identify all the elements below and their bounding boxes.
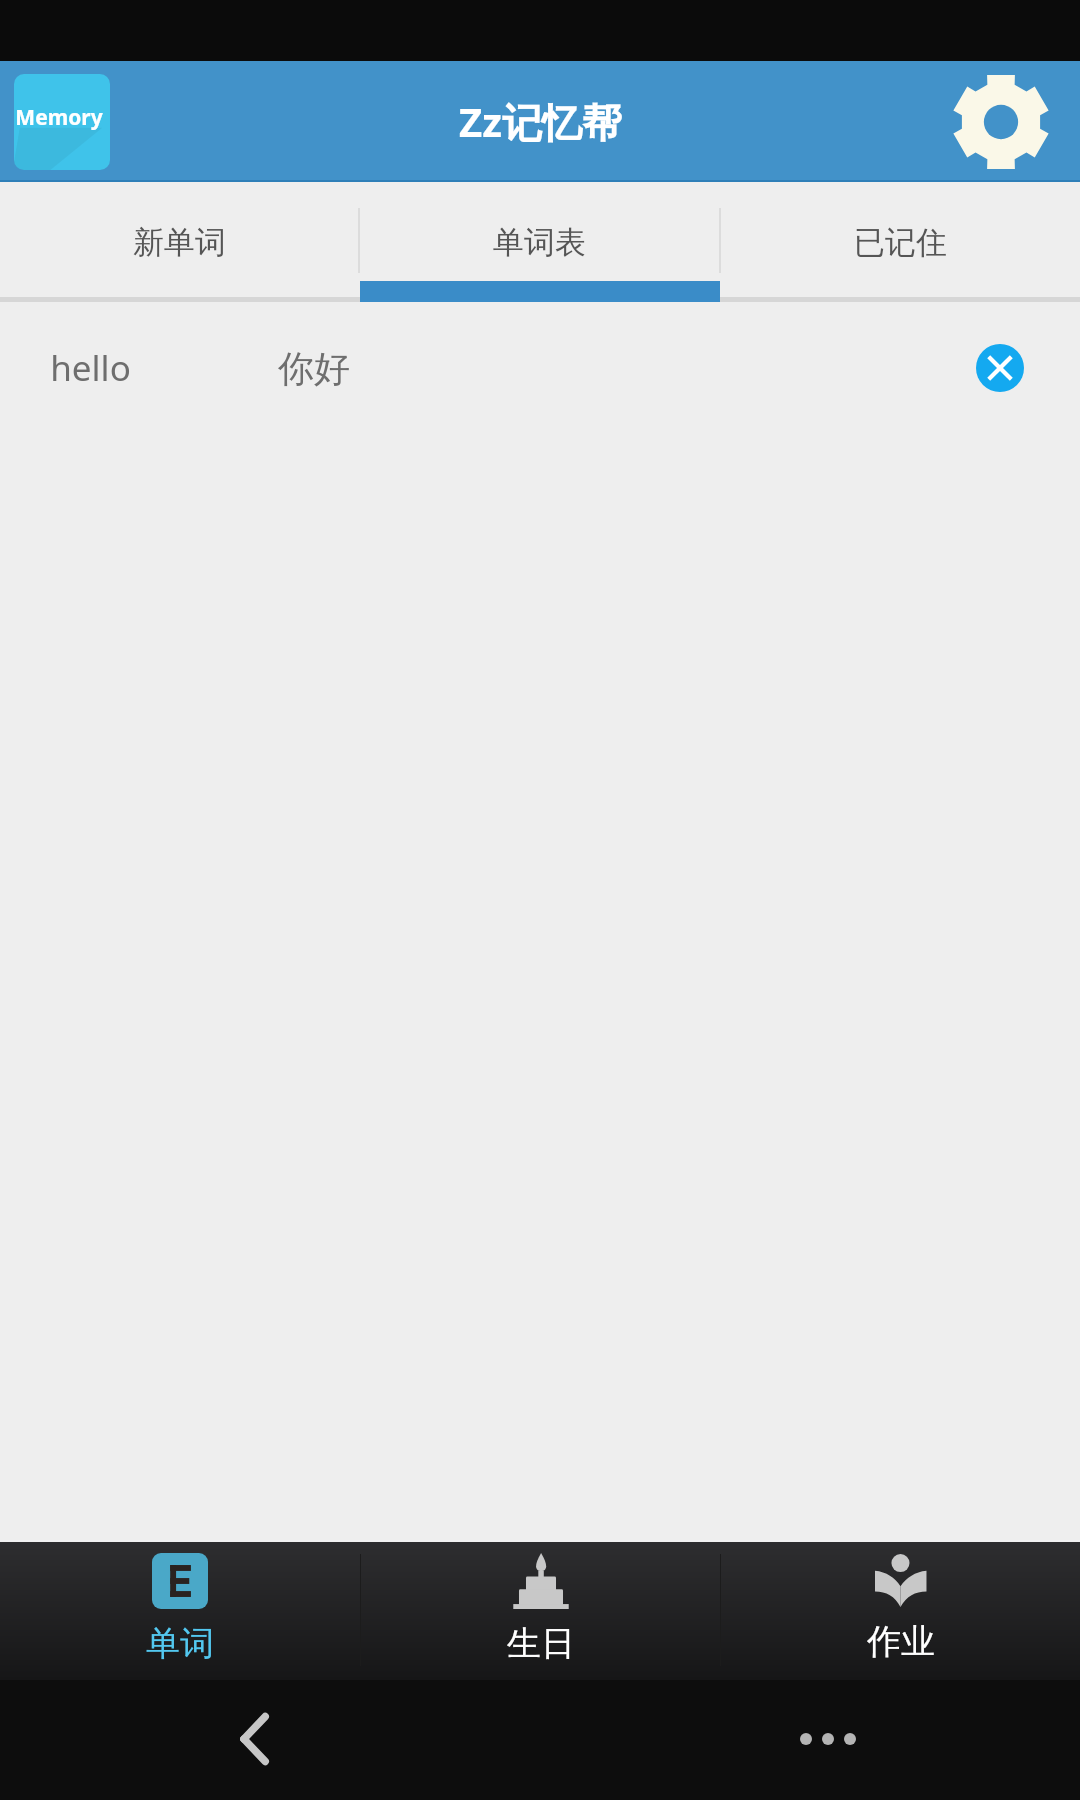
button[interactable]: Settings [951,72,1051,172]
staticText: 生日 [507,1622,575,1665]
staticText: Memory [15,103,103,132]
staticText: hello [50,344,131,392]
button[interactable]: Back [206,1691,302,1787]
button[interactable]: Recent apps [775,1691,856,1787]
staticText: Zz记忆帮 [459,94,622,149]
button[interactable]: App icon [14,74,110,170]
staticText: 新单词 [133,223,226,262]
button[interactable]: 新单词 [0,182,358,302]
staticText: 已记住 [854,223,947,262]
button[interactable]: 生日 [361,1540,720,1680]
button[interactable]: 已记住 [721,182,1080,302]
staticText: 单词 [146,1622,214,1665]
staticText: 你好 [278,346,350,391]
button[interactable]: Delete [976,344,1024,392]
button[interactable]: 单词表 [360,182,719,302]
button[interactable]: 单词 [0,1540,360,1680]
button[interactable]: 作业 [721,1540,1080,1680]
staticText: 作业 [867,1620,935,1663]
staticText: 单词表 [493,223,586,262]
button[interactable]: hello [0,302,1080,434]
